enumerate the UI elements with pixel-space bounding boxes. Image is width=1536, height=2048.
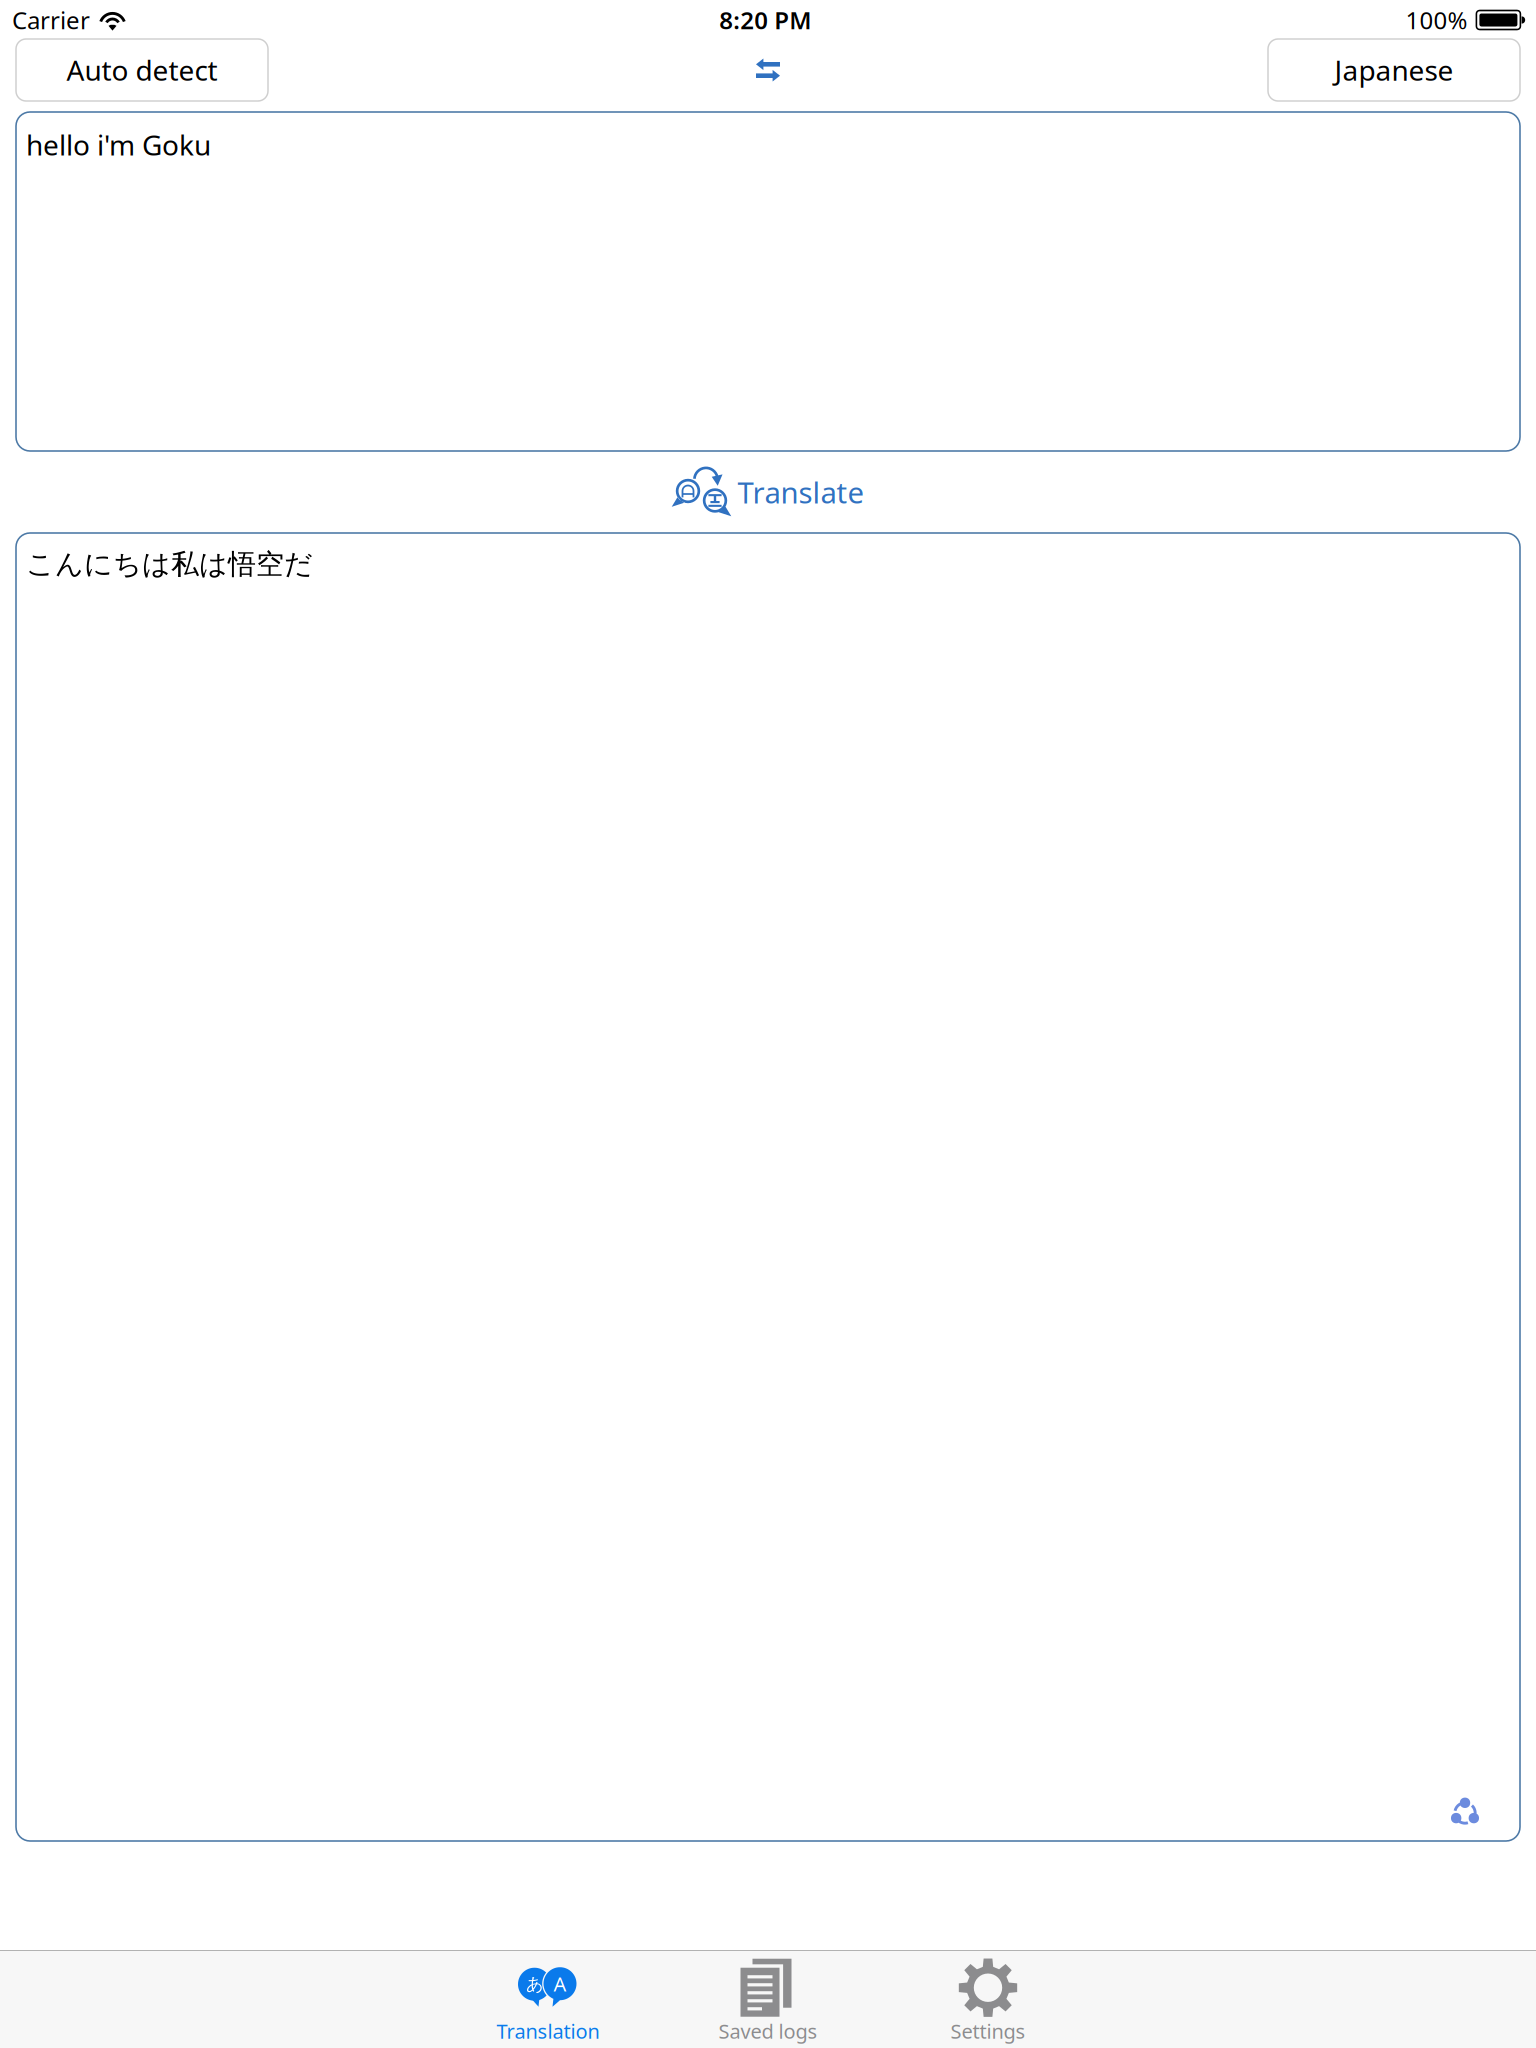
button[interactable]: あ (438, 1951, 658, 2048)
staticText: 8:20 PM (719, 4, 811, 36)
staticText: あ (526, 1974, 544, 1995)
button[interactable]: Share (1450, 1798, 1480, 1828)
staticText: Translation (496, 2018, 599, 2044)
staticText: 100% (1405, 4, 1467, 36)
staticText: Auto detect (66, 51, 217, 89)
staticText: Translate (737, 472, 864, 511)
button[interactable]: Swap languages (723, 40, 813, 100)
button[interactable]: Japanese (1268, 39, 1520, 101)
button[interactable]: Saved logs (658, 1951, 878, 2048)
button[interactable]: Translate (671, 451, 864, 533)
staticText: Japanese (1334, 51, 1453, 89)
staticText: Saved logs (718, 2018, 817, 2044)
button[interactable]: Settings (878, 1951, 1098, 2048)
staticText: A (553, 1970, 566, 1997)
staticText: こんにちは私は悟空だ (26, 547, 313, 581)
button[interactable]: Auto detect (16, 39, 268, 101)
staticText: Carrier (12, 4, 90, 36)
staticText: hello i'm Goku (26, 126, 211, 163)
staticText: Settings (950, 2018, 1025, 2044)
